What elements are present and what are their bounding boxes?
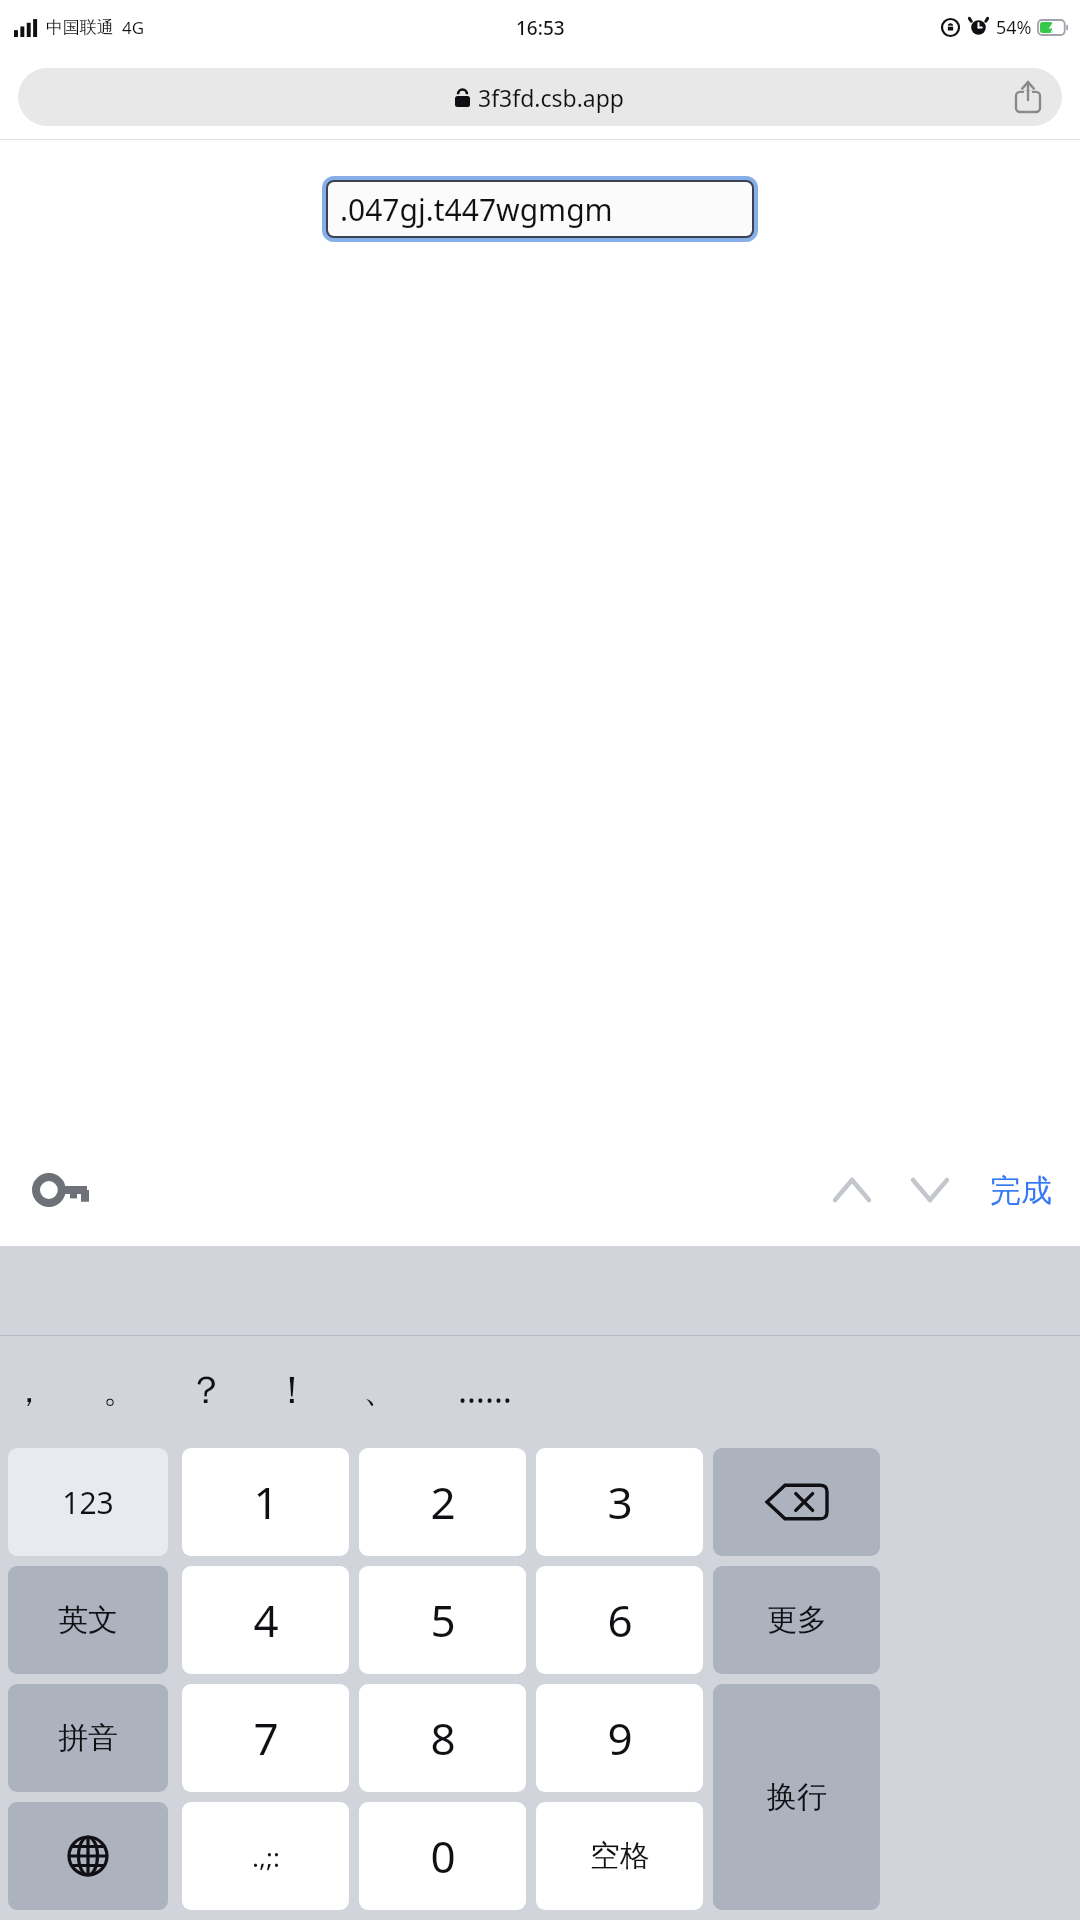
staticText: 4G xyxy=(122,16,145,39)
staticText: 6 xyxy=(607,1590,633,1650)
button[interactable]: Next field xyxy=(898,1158,962,1222)
staticText: 8 xyxy=(430,1708,456,1768)
button[interactable]: 英文 xyxy=(8,1566,168,1674)
staticText: 中国联通 xyxy=(46,17,114,38)
button[interactable]: Previous field xyxy=(820,1158,884,1222)
button[interactable]: 换行 xyxy=(713,1684,880,1910)
button[interactable]: ？ xyxy=(166,1350,246,1430)
button[interactable]: 3 xyxy=(536,1448,703,1556)
staticText: .,;: xyxy=(252,1839,280,1874)
staticText: 1 xyxy=(253,1472,279,1532)
staticText: ， xyxy=(12,1369,46,1412)
button[interactable]: 123 xyxy=(8,1448,168,1556)
staticText: 换行 xyxy=(767,1778,827,1816)
button[interactable]: 6 xyxy=(536,1566,703,1674)
staticText: .047gj.t447wgmgm xyxy=(340,189,613,230)
staticText: 3f3fd.csb.app xyxy=(478,82,625,113)
staticText: 4 xyxy=(253,1590,279,1650)
button[interactable]: 0 xyxy=(359,1802,526,1910)
button[interactable]: 1 xyxy=(182,1448,349,1556)
button[interactable]: 拼音 xyxy=(8,1684,168,1792)
button[interactable]: 空格 xyxy=(536,1802,703,1910)
staticText: 拼音 xyxy=(58,1719,118,1757)
button[interactable]: Backspace xyxy=(713,1448,880,1556)
button[interactable]: Share xyxy=(1008,77,1048,117)
button[interactable]: 9 xyxy=(536,1684,703,1792)
button[interactable]: 8 xyxy=(359,1684,526,1792)
staticText: 。 xyxy=(103,1369,137,1412)
button[interactable]: 5 xyxy=(359,1566,526,1674)
button[interactable]: .047gj.t447wgmgm xyxy=(328,182,752,236)
staticText: 更多 xyxy=(767,1601,827,1639)
button[interactable]: 3f3fd.csb.app xyxy=(18,68,1062,126)
staticText: 54% xyxy=(996,15,1032,40)
staticText: …… xyxy=(458,1367,512,1413)
staticText: 2 xyxy=(430,1472,456,1532)
button[interactable]: ！ xyxy=(252,1350,332,1430)
staticText: 3 xyxy=(607,1472,633,1532)
staticText: ？ xyxy=(187,1366,225,1414)
button[interactable]: Switch keyboard xyxy=(8,1802,168,1910)
button[interactable]: ， xyxy=(0,1350,69,1430)
button[interactable]: 、 xyxy=(340,1350,420,1430)
staticText: 完成 xyxy=(990,1171,1052,1210)
staticText: 英文 xyxy=(58,1601,118,1639)
button[interactable]: …… xyxy=(445,1350,525,1430)
staticText: ！ xyxy=(273,1366,311,1414)
button[interactable]: 2 xyxy=(359,1448,526,1556)
staticText: 9 xyxy=(607,1708,633,1768)
staticText: 16:53 xyxy=(516,15,565,41)
staticText: 、 xyxy=(363,1369,397,1412)
staticText: 7 xyxy=(253,1708,279,1768)
button[interactable]: 4 xyxy=(182,1566,349,1674)
staticText: 0 xyxy=(430,1826,456,1886)
button[interactable]: 更多 xyxy=(713,1566,880,1674)
staticText: 5 xyxy=(430,1590,456,1650)
staticText: 空格 xyxy=(590,1837,650,1875)
staticText: 123 xyxy=(62,1482,114,1523)
button[interactable]: 7 xyxy=(182,1684,349,1792)
button[interactable]: .,;: xyxy=(182,1802,349,1910)
button[interactable]: Passwords xyxy=(24,1153,98,1227)
button[interactable]: 。 xyxy=(80,1350,160,1430)
button[interactable]: 完成 xyxy=(984,1163,1058,1218)
